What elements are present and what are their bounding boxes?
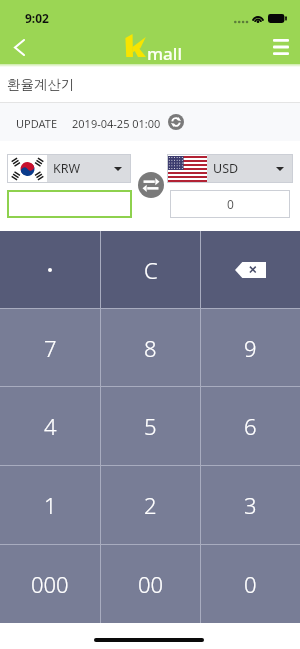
button[interactable]: 9 — [201, 309, 300, 386]
staticText: KRW — [53, 160, 81, 177]
staticText: mall — [147, 42, 183, 65]
staticText: 00 — [138, 569, 164, 599]
staticText: UPDATE — [16, 116, 57, 131]
staticText: 6 — [244, 411, 257, 441]
button[interactable]: 000 — [0, 545, 100, 623]
staticText: 8 — [144, 333, 157, 363]
button[interactable]: USD — [167, 154, 293, 183]
staticText: 9 — [244, 333, 257, 363]
button[interactable]: 0 — [201, 545, 300, 623]
button[interactable]: Swap currencies — [138, 172, 164, 198]
staticText: 2019-04-25 01:00 — [72, 116, 161, 131]
button[interactable]: Menu — [262, 28, 300, 66]
staticText: USD — [213, 160, 239, 177]
staticText: 0 — [227, 196, 234, 212]
staticText: 환율계산기 — [7, 76, 75, 93]
staticText: C — [144, 255, 158, 285]
button[interactable] — [7, 190, 132, 218]
button[interactable]: KRW — [7, 154, 131, 183]
staticText: 4 — [44, 411, 57, 441]
button[interactable]: 5 — [101, 387, 200, 465]
button[interactable]: 7 — [0, 309, 100, 386]
button[interactable]: Refresh — [168, 114, 184, 130]
button[interactable]: 4 — [0, 387, 100, 465]
button[interactable]: C — [101, 231, 200, 308]
button[interactable]: Backspace — [201, 231, 300, 308]
staticText: 1 — [44, 490, 57, 520]
staticText: 5 — [144, 411, 157, 441]
button[interactable]: 3 — [201, 466, 300, 544]
staticText: 0 — [244, 569, 257, 599]
staticText: 2 — [144, 490, 157, 520]
button[interactable]: 8 — [101, 309, 200, 386]
button[interactable]: 2 — [101, 466, 200, 544]
staticText: 9:02 — [25, 10, 49, 26]
staticText: 7 — [44, 333, 57, 363]
button[interactable]: 1 — [0, 466, 100, 544]
button[interactable]: Back — [0, 28, 38, 66]
button[interactable]: 6 — [201, 387, 300, 465]
button[interactable]: 0 — [170, 190, 290, 218]
staticText: 3 — [244, 490, 257, 520]
staticText: 000 — [31, 569, 69, 599]
button[interactable]: Decimal point — [0, 231, 100, 308]
button[interactable]: 00 — [101, 545, 200, 623]
